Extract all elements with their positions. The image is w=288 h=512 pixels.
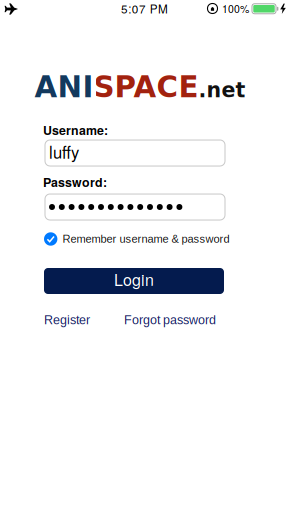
- button[interactable]: Forgot password: [124, 313, 234, 327]
- staticText: luffy: [49, 140, 79, 163]
- staticText: ANI: [34, 70, 93, 104]
- staticText: Register: [44, 313, 90, 327]
- staticText: Login: [114, 267, 154, 290]
- staticText: Forgot password: [124, 313, 216, 327]
- staticText: .net: [198, 78, 245, 102]
- staticText: Username:: [43, 121, 108, 139]
- staticText: 100%: [222, 1, 249, 16]
- button[interactable]: Register: [44, 313, 124, 327]
- staticText: Remember username & password: [62, 233, 229, 245]
- button[interactable]: Remember username & password: [44, 232, 264, 246]
- button[interactable]: Username: [45, 140, 225, 166]
- staticText: 5:07 PM: [121, 0, 168, 17]
- button[interactable]: Login: [44, 268, 224, 294]
- staticText: Password:: [43, 173, 107, 191]
- button[interactable]: Password: [45, 194, 225, 220]
- staticText: SPACE: [93, 70, 198, 104]
